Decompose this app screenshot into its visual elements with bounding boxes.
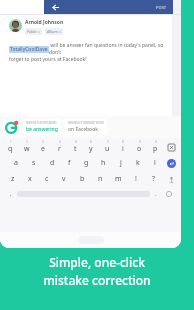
staticText: j [120,158,122,168]
staticText: 5 [75,140,77,144]
staticText: r [58,144,61,154]
staticText: mistake correction [43,272,151,288]
staticText: v [62,174,66,184]
button[interactable]: b [73,171,91,187]
staticText: on Facebook [68,126,98,133]
button[interactable]: WRONGLY COMBINED WORD [65,119,107,135]
staticText: o [137,144,142,154]
button[interactable]: ! [127,171,145,187]
button[interactable]: 6 [83,139,99,155]
staticText: s [32,158,36,168]
button[interactable]: m [109,171,127,187]
staticText: z [11,174,15,184]
button[interactable]: 8 [115,139,131,155]
staticText: 2 [26,140,28,144]
staticText: will be answer fan questions in today's … [49,42,172,56]
staticText: Public [27,29,37,34]
button[interactable]: Backspace [163,139,179,155]
staticText: ! [135,174,137,184]
staticText: g [84,158,89,168]
staticText: Simple, one-click [49,254,145,270]
button[interactable]: Grammarly [5,120,19,134]
staticText: 3 [42,140,44,144]
staticText: be answering [26,126,58,133]
staticText: 0 [155,140,157,144]
staticText: Album [47,29,58,34]
button[interactable]: z [4,171,21,187]
button[interactable]: 4 [51,139,67,155]
staticText: TotallyCoolDave [10,46,48,53]
button[interactable]: 7 [99,139,115,155]
staticText: n [98,174,103,184]
button[interactable]: a [7,155,25,171]
staticText: 8 [122,140,124,144]
staticText: 7 [107,140,109,144]
button[interactable]: Back [50,2,60,12]
staticText: forget to post yours at Facebook! [9,56,87,63]
button[interactable]: f [61,155,78,171]
staticText: , [10,190,12,198]
staticText: m [115,174,122,184]
staticText: p [153,144,158,154]
staticText: WRONGLY COMBINED WORD [68,121,104,125]
staticText: t [74,144,77,154]
staticText: 6 [90,140,92,144]
staticText: y [89,144,93,154]
staticText: u [105,144,110,154]
button[interactable]: c [38,171,55,187]
button[interactable]: s [25,155,43,171]
button[interactable]: d [43,155,61,171]
staticText: POST [156,5,167,10]
button[interactable]: 0 [147,139,163,155]
staticText: b [80,174,85,184]
button[interactable]: g [78,155,95,171]
button[interactable]: POST [150,3,173,12]
staticText: a [14,158,18,168]
button[interactable]: 5 [67,139,83,155]
button[interactable]: n [91,171,109,187]
staticText: h [101,158,106,168]
staticText: REMOVE THE REPEATING [26,121,57,125]
button[interactable]: l [146,155,163,171]
button[interactable]: Profile photo [9,19,22,32]
button[interactable]: v [55,171,73,187]
staticText: 4 [59,140,61,144]
staticText: c [45,174,49,184]
staticText: f [68,158,71,168]
staticText: w [24,144,30,154]
staticText: l [154,158,156,168]
button[interactable]: Enter [163,155,179,171]
staticText: Arnold Johnson [25,19,64,26]
button[interactable]: , [5,187,17,201]
staticText: 9 [139,140,141,144]
button[interactable]: Album [45,28,63,35]
button[interactable]: ? [145,171,163,187]
button[interactable]: REMOVE THE REPEATING [23,119,61,135]
button[interactable]: 3 [35,139,51,155]
staticText: q [8,144,13,154]
button[interactable]: 1 [2,139,19,155]
button[interactable]: k [129,155,146,171]
staticText: d [50,158,55,168]
button[interactable]: . [150,187,162,201]
staticText: i [122,144,124,154]
button[interactable]: Public [25,28,42,35]
button[interactable]: Emoji [162,187,176,201]
staticText: k [136,158,140,168]
staticText: x [28,174,32,184]
button[interactable]: x [21,171,38,187]
staticText: e [41,144,45,154]
button[interactable]: 9 [131,139,147,155]
staticText: ? [152,174,156,184]
staticText: 1 [10,140,12,144]
button[interactable]: j [112,155,129,171]
staticText: . [155,190,157,198]
button[interactable]: 2 [19,139,35,155]
button[interactable]: Voice input [163,171,179,187]
button[interactable]: h [95,155,112,171]
